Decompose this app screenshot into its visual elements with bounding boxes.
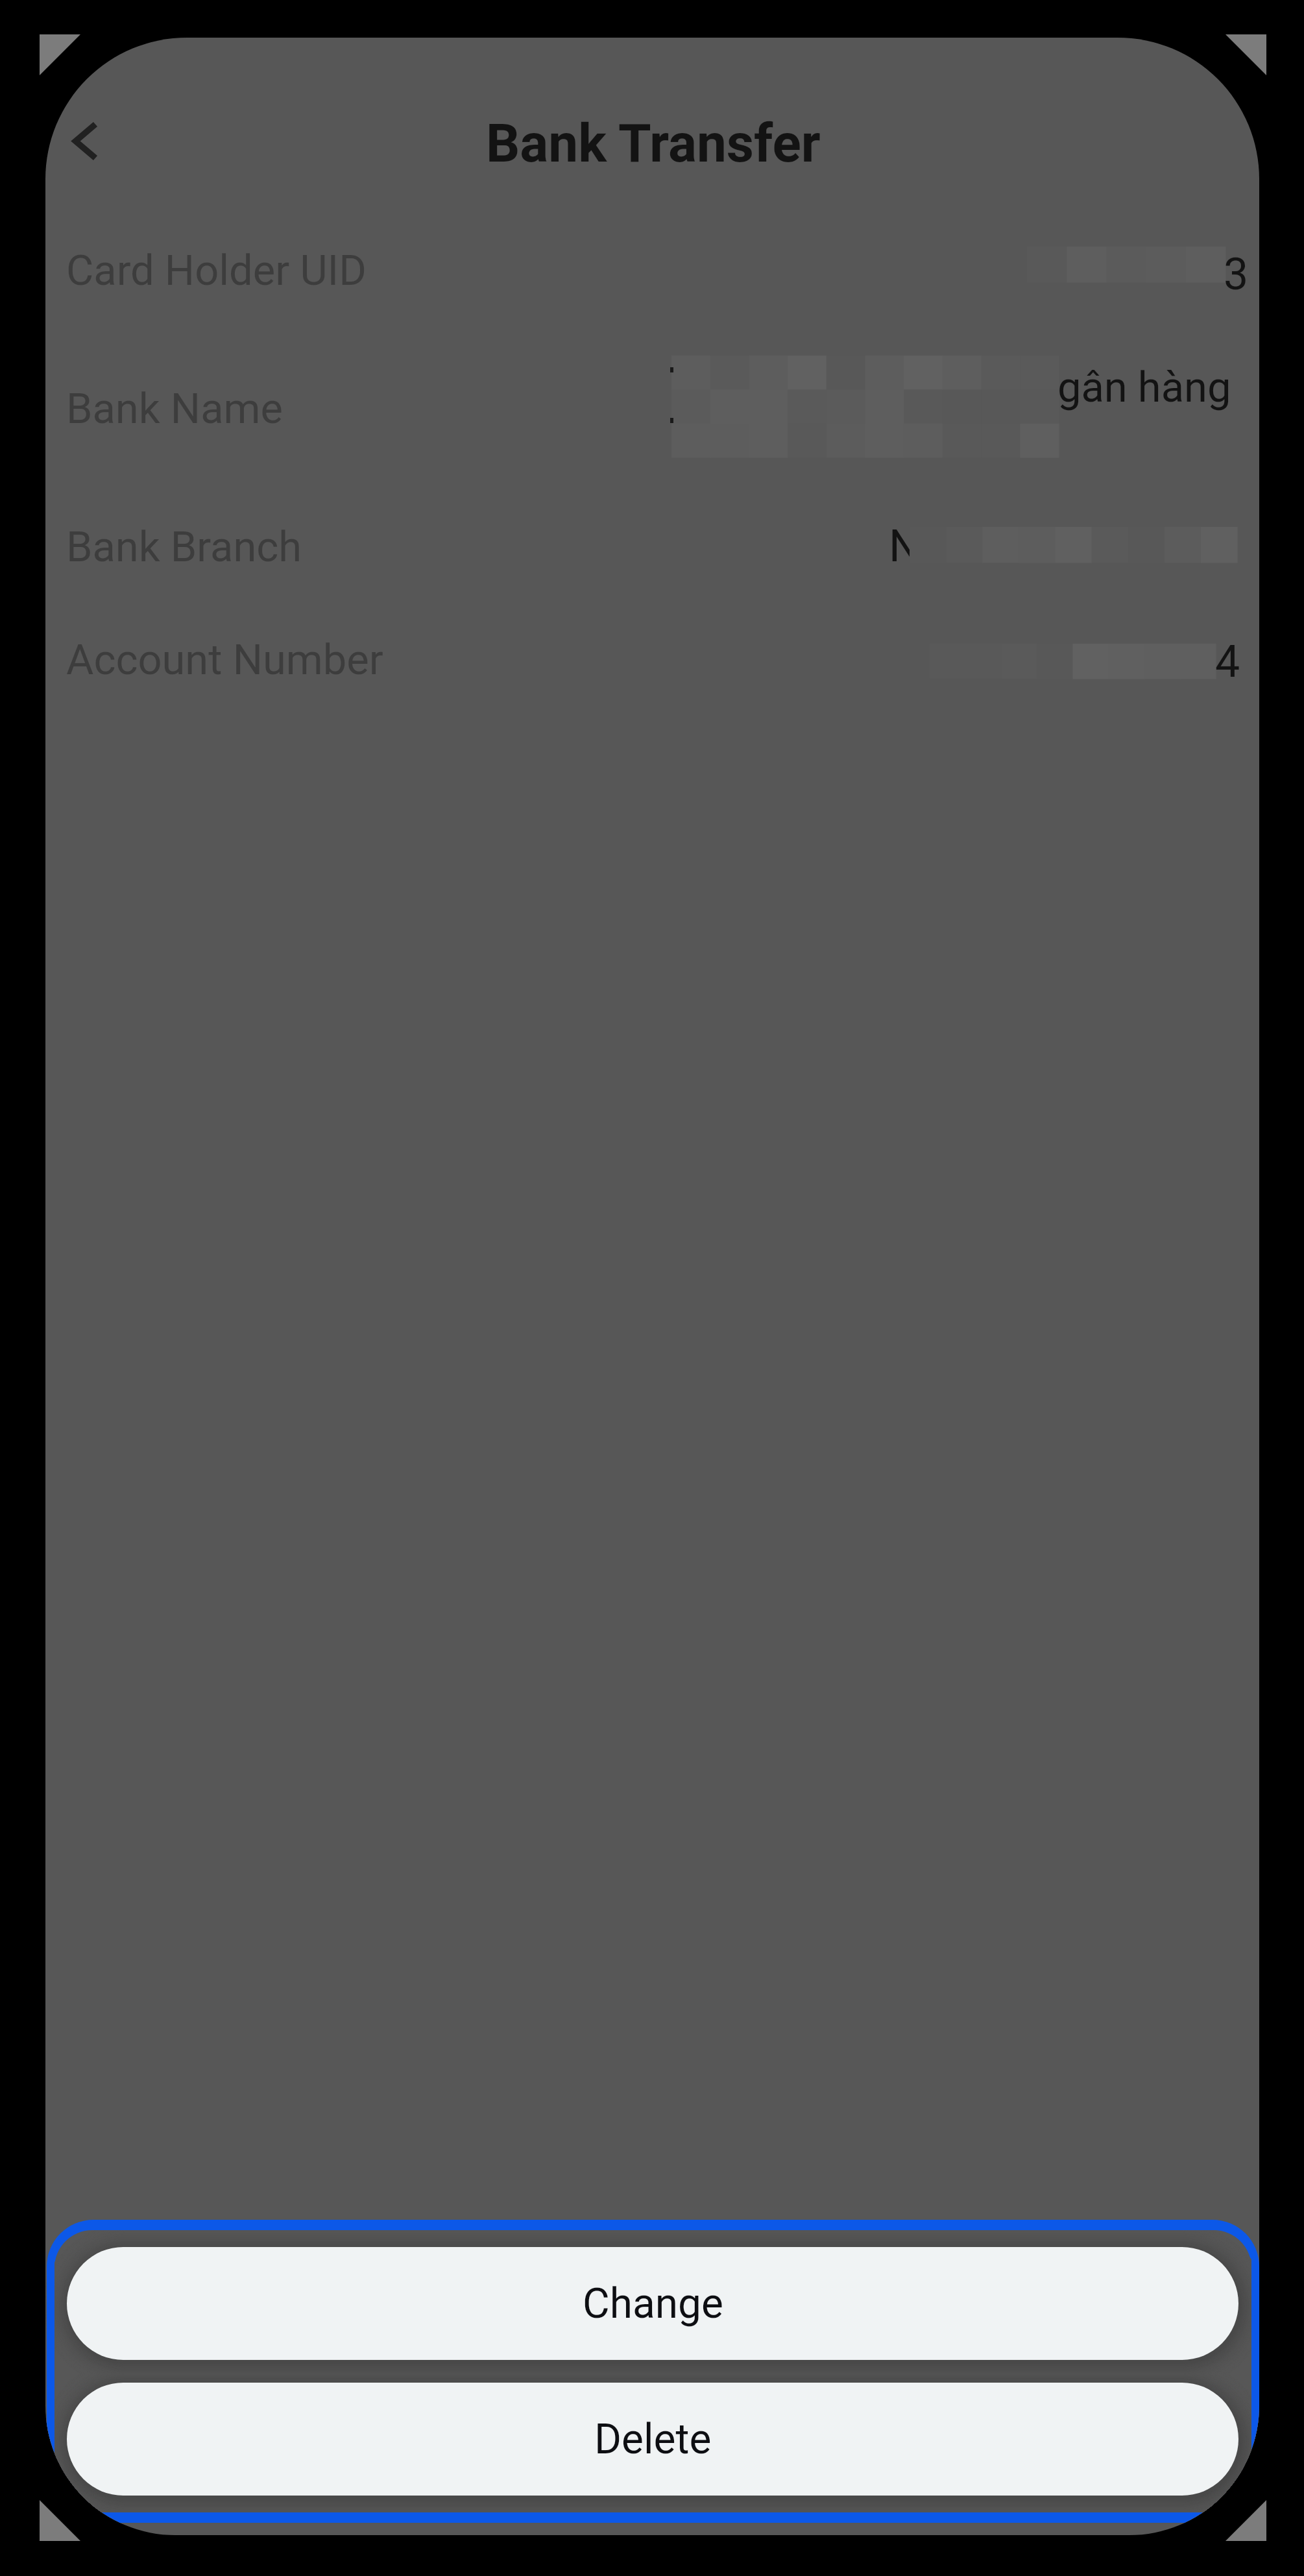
staticText: Delete: [594, 2415, 712, 2464]
staticText: Bank Name: [66, 384, 284, 433]
staticText: gân hàng: [1057, 363, 1231, 412]
button[interactable]: Delete: [67, 2383, 1238, 2496]
staticText: Account Number: [66, 635, 383, 685]
button[interactable]: Change: [67, 2247, 1238, 2360]
staticText: 4: [1215, 636, 1240, 688]
staticText: Change: [583, 2279, 723, 2328]
staticText: Bank Branch: [66, 522, 302, 572]
staticText: Card Holder UID: [66, 246, 367, 295]
button[interactable]: Back: [45, 92, 143, 189]
staticText: N: [889, 520, 921, 572]
staticText: Bank Transfer: [486, 112, 821, 175]
staticText: 3: [1224, 249, 1249, 300]
